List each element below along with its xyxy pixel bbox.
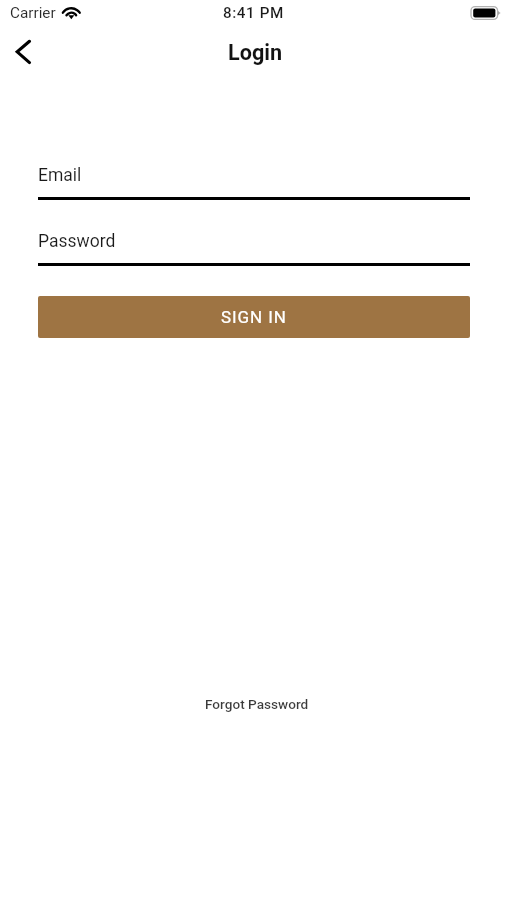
staticText: Email	[38, 165, 82, 186]
button[interactable]: Password	[38, 231, 470, 266]
button[interactable]: Email	[38, 165, 470, 200]
staticText: 8:41 PM	[223, 4, 284, 22]
button[interactable]: SIGN IN	[38, 296, 470, 338]
staticText: Password	[38, 231, 116, 252]
staticText: Login	[228, 40, 283, 65]
button[interactable]: Forgot Password	[189, 688, 325, 720]
other: Battery full	[471, 6, 501, 20]
staticText: Carrier	[10, 4, 56, 22]
staticText: Forgot Password	[205, 696, 309, 712]
staticText: SIGN IN	[221, 307, 287, 327]
other: Wi-Fi signal	[62, 6, 81, 20]
button[interactable]: Back	[5, 34, 41, 70]
